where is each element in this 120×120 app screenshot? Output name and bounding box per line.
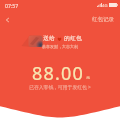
button[interactable]: Back	[3, 15, 12, 24]
staticText: 07:57	[5, 2, 19, 9]
button[interactable]: 红包记录	[92, 16, 114, 23]
staticText: 恭喜发财，大吉大利	[42, 44, 78, 49]
staticText: 4G	[102, 3, 108, 9]
staticText: 送给	[43, 35, 55, 42]
staticText: 元	[86, 75, 91, 80]
staticText: 红包记录	[92, 16, 114, 23]
button[interactable]: 已存入零钱，可用于发红包 >	[0, 84, 120, 91]
staticText: 的红包	[64, 35, 82, 42]
staticText: 88.00	[32, 61, 85, 86]
